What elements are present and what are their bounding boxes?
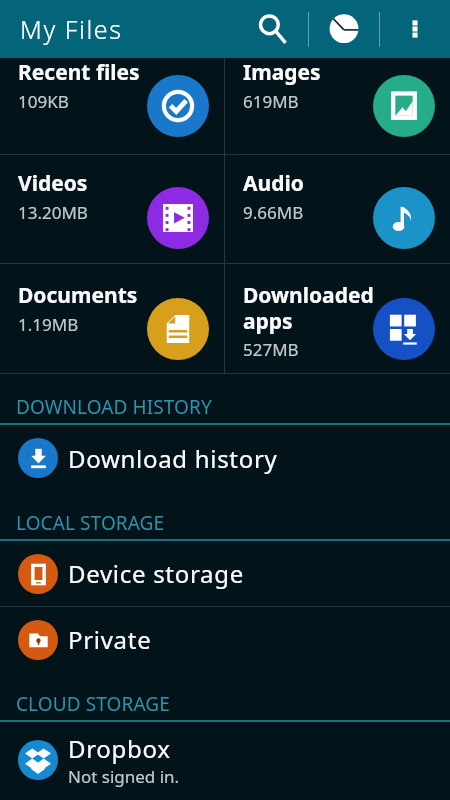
staticText: 527MB — [243, 338, 299, 361]
staticText: Not signed in. — [68, 765, 180, 788]
staticText: 619MB — [243, 90, 299, 113]
button[interactable]: Private — [0, 607, 450, 672]
staticText: CLOUD STORAGE — [16, 691, 170, 717]
staticText: Videos — [18, 169, 88, 198]
button[interactable]: Device storage — [0, 541, 450, 606]
staticText: Private — [68, 623, 152, 656]
button[interactable]: Images — [225, 58, 450, 154]
button[interactable]: Recent files — [0, 58, 224, 154]
staticText: Images — [243, 58, 321, 87]
staticText: Dropbox — [68, 732, 171, 765]
button[interactable]: Search — [243, 0, 303, 58]
button[interactable]: Storage usage — [314, 0, 374, 58]
button[interactable]: Dropbox — [0, 722, 450, 798]
staticText: Documents — [18, 281, 138, 310]
staticText: LOCAL STORAGE — [16, 510, 165, 536]
staticText: My Files — [20, 12, 123, 46]
button[interactable]: Download history — [0, 425, 450, 491]
staticText: 13.20MB — [18, 201, 88, 224]
staticText: Downloaded apps — [243, 281, 393, 335]
staticText: Device storage — [68, 557, 244, 590]
button[interactable]: Videos — [0, 155, 224, 263]
button[interactable]: Audio — [225, 155, 450, 263]
staticText: 1.19MB — [18, 313, 79, 336]
staticText: Audio — [243, 169, 304, 198]
button[interactable]: Downloaded apps — [225, 264, 450, 373]
staticText: 109KB — [18, 90, 69, 113]
staticText: Download history — [68, 442, 278, 475]
button[interactable]: More options — [385, 0, 445, 58]
button[interactable]: Documents — [0, 264, 224, 373]
staticText: 9.66MB — [243, 201, 304, 224]
staticText: Recent files — [18, 58, 140, 87]
staticText: DOWNLOAD HISTORY — [16, 394, 212, 420]
